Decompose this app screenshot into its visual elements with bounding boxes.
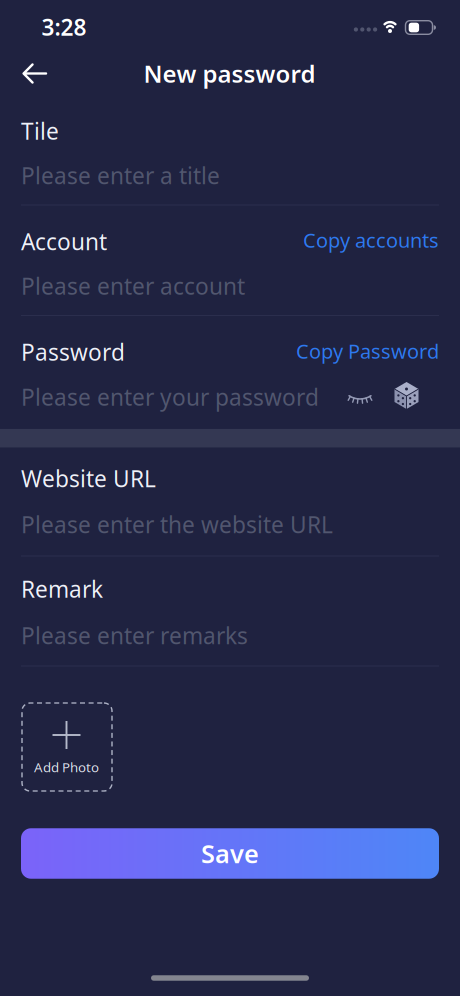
staticText: Save: [201, 837, 259, 870]
staticText: Add Photo: [34, 758, 99, 776]
button[interactable]: Please enter a title: [21, 153, 439, 197]
button[interactable]: Copy Password: [296, 338, 439, 364]
staticText: 3:28: [41, 12, 86, 42]
button[interactable]: Please enter the website URL: [21, 502, 439, 546]
staticText: Account: [21, 226, 107, 256]
button[interactable]: Save: [21, 828, 439, 879]
staticText: Copy accounts: [303, 227, 439, 253]
staticText: Tile: [21, 116, 59, 146]
button[interactable]: Generate random password: [389, 379, 423, 411]
button[interactable]: Add Photo: [22, 703, 112, 791]
staticText: New password: [143, 58, 315, 89]
button[interactable]: Please enter account: [21, 264, 439, 308]
staticText: Please enter remarks: [21, 620, 248, 650]
button[interactable]: Please enter remarks: [21, 613, 439, 657]
button[interactable]: Copy accounts: [303, 227, 439, 253]
staticText: Please enter your password: [21, 382, 319, 412]
staticText: Remark: [21, 574, 103, 604]
button[interactable]: Back: [12, 53, 56, 93]
button[interactable]: Show password: [343, 381, 377, 411]
button[interactable]: Please enter your password: [21, 375, 439, 419]
staticText: Please enter the website URL: [21, 509, 333, 539]
staticText: Please enter account: [21, 271, 245, 301]
staticText: Website URL: [21, 463, 156, 493]
staticText: Copy Password: [296, 338, 439, 364]
staticText: Password: [21, 337, 125, 367]
staticText: Please enter a title: [21, 160, 220, 190]
